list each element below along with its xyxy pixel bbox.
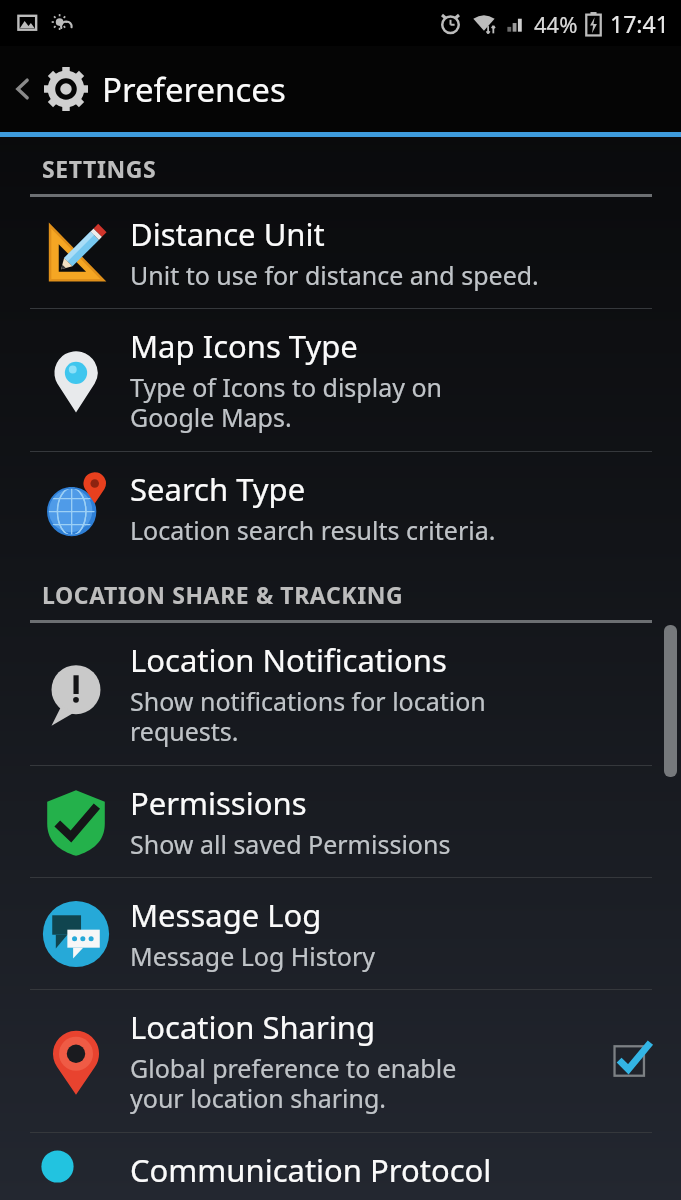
staticText: Distance Unit	[130, 213, 325, 255]
staticText: Message Log History	[130, 939, 376, 973]
staticText: Location Notifications	[130, 639, 447, 681]
staticText: Preferences	[102, 67, 286, 112]
staticText: Global preference to enable your locatio…	[130, 1051, 457, 1116]
staticText: Map Icons Type	[130, 325, 358, 367]
button[interactable]: Location Notifications	[0, 623, 681, 765]
staticText: Show notifications for location requests…	[130, 684, 486, 749]
button[interactable]: Distance Unit	[0, 197, 681, 308]
button[interactable]: Communication Protocol	[0, 1133, 681, 1200]
staticText: Unit to use for distance and speed.	[130, 258, 539, 292]
button[interactable]: Message Log	[0, 878, 681, 989]
staticText: 44%	[534, 9, 578, 39]
button[interactable]: Search Type	[0, 452, 681, 563]
staticText: 17:41	[610, 8, 669, 39]
staticText: Location search results criteria.	[130, 513, 496, 547]
button[interactable]: Preferences, navigate up	[0, 46, 681, 132]
staticText: Message Log	[130, 894, 322, 936]
button[interactable]: Permissions	[0, 766, 681, 877]
button[interactable]: Map Icons Type	[0, 309, 681, 451]
button[interactable]: Location Sharing enabled	[605, 1034, 659, 1088]
staticText: SETTINGS	[42, 153, 157, 184]
staticText: Show all saved Permissions	[130, 827, 451, 861]
button[interactable]: Location Sharing	[0, 990, 681, 1132]
staticText: Location Sharing	[130, 1006, 376, 1048]
staticText: Type of Icons to display on Google Maps.	[130, 370, 443, 435]
staticText: Search Type	[130, 468, 306, 510]
staticText: Communication Protocol	[130, 1149, 492, 1184]
staticText: LOCATION SHARE & TRACKING	[42, 579, 404, 610]
staticText: Permissions	[130, 782, 307, 824]
